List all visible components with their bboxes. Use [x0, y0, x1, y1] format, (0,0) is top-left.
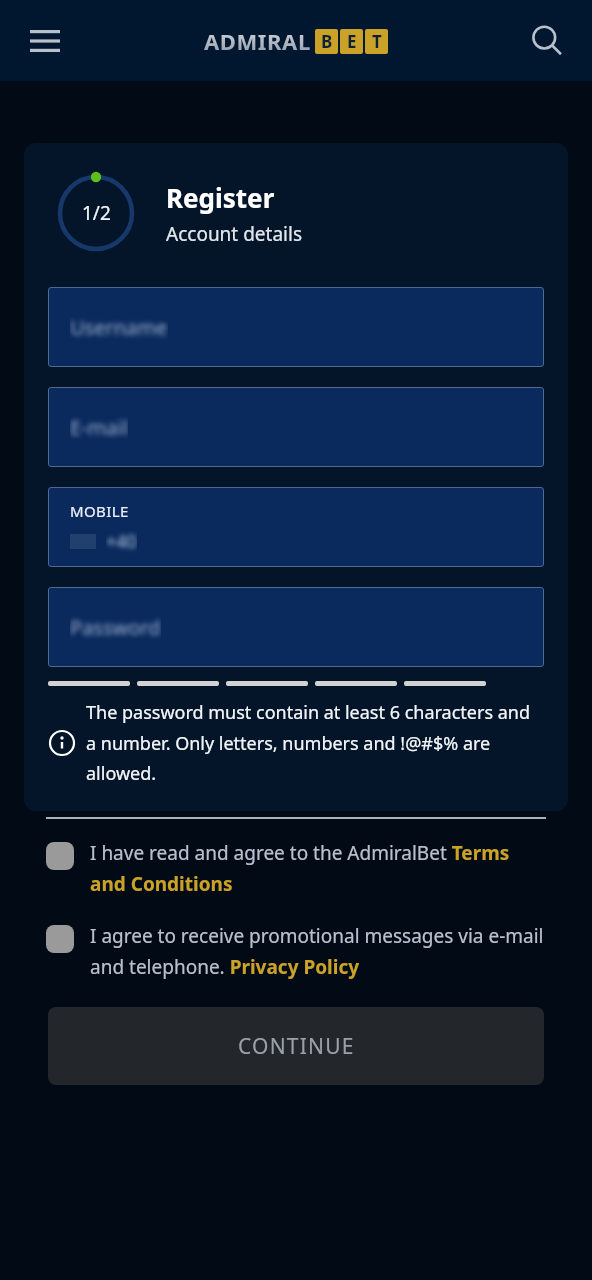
button[interactable]: Menu: [18, 14, 72, 68]
button[interactable]: I agree to receive promotional messages …: [46, 923, 546, 980]
button[interactable]: CONTINUE: [48, 1007, 544, 1085]
staticText: Account details: [166, 221, 302, 247]
button[interactable]: Username: [48, 287, 544, 367]
button[interactable]: E-mail: [48, 387, 544, 467]
staticText: I have read and agree to the AdmiralBet …: [90, 840, 546, 897]
staticText: E: [347, 30, 357, 53]
staticText: Username: [70, 314, 168, 341]
staticText: 1/2: [82, 200, 111, 226]
button[interactable]: MOBILE: [48, 487, 544, 567]
staticText: The password must contain at least 6 cha…: [86, 700, 544, 785]
button[interactable]: Password: [48, 587, 544, 667]
staticText: MOBILE: [70, 501, 129, 521]
staticText: E-mail: [70, 414, 128, 441]
staticText: CONTINUE: [238, 1032, 355, 1061]
staticText: Register: [166, 180, 275, 215]
staticText: B: [321, 30, 333, 53]
button[interactable]: I have read and agree to the AdmiralBet …: [46, 840, 546, 897]
staticText: T: [372, 30, 382, 53]
staticText: +40: [106, 529, 137, 554]
staticText: Password: [70, 614, 161, 641]
staticText: ADMIRAL: [204, 26, 311, 56]
staticText: I agree to receive promotional messages …: [90, 923, 546, 980]
button[interactable]: Search: [520, 14, 574, 68]
